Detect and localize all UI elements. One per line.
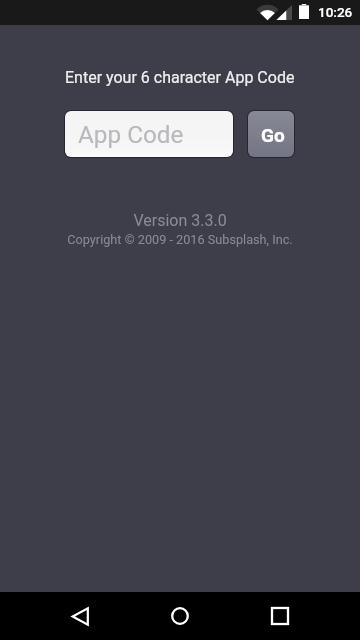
button[interactable]: App Code — [65, 111, 233, 157]
staticText: Go — [261, 124, 285, 146]
staticText: Copyright © 2009 - 2016 Subsplash, Inc. — [67, 232, 293, 247]
staticText: Version 3.3.0 — [133, 211, 227, 230]
staticText: App Code — [78, 120, 184, 148]
staticText: Enter your 6 character App Code — [65, 68, 295, 87]
button[interactable]: Recent apps — [256, 592, 304, 640]
staticText: 10:26 — [318, 4, 353, 20]
button[interactable]: Home — [156, 592, 204, 640]
button[interactable]: Back — [56, 592, 104, 640]
button[interactable]: Go — [248, 111, 294, 157]
